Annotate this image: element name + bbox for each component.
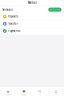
staticText: Home <box>6 94 10 96</box>
staticText: Me <box>55 94 57 96</box>
button[interactable]: Payments <box>0 27 64 35</box>
staticText: Get Started <box>50 9 60 11</box>
button[interactable]: Chats <box>16 88 32 99</box>
staticText: Transfer <box>8 22 18 25</box>
button[interactable]: Transfer <box>0 20 64 27</box>
staticText: Chats <box>22 94 26 96</box>
button[interactable]: Home <box>0 88 16 99</box>
button[interactable]: Me <box>48 88 64 99</box>
button[interactable]: Get Started <box>48 8 61 12</box>
staticText: Wallet <box>27 1 36 4</box>
staticText: Services <box>2 8 12 11</box>
staticText: Find <box>38 94 41 96</box>
staticText: Payments <box>8 29 20 33</box>
button[interactable]: Find <box>32 88 48 99</box>
button[interactable]: Rewards <box>0 13 64 20</box>
staticText: Rewards <box>8 15 18 18</box>
